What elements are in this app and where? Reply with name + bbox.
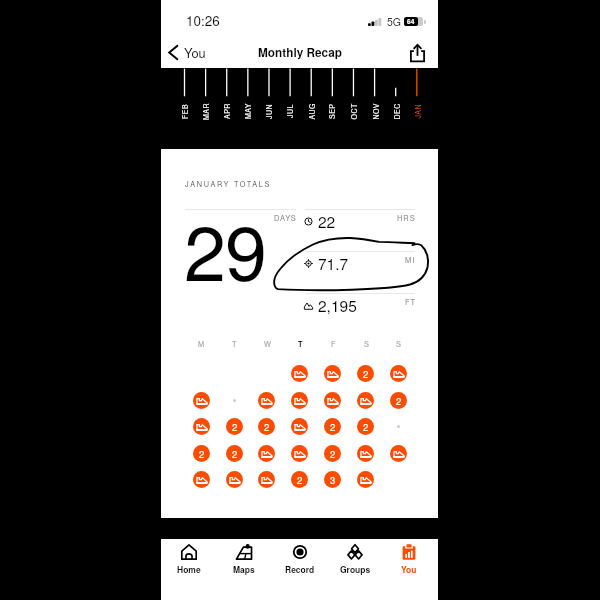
staticText: HRS (397, 212, 416, 223)
staticText: 71.7 (318, 252, 349, 274)
button[interactable] (258, 392, 275, 409)
button[interactable]: You (384, 539, 434, 579)
staticText: T (298, 339, 303, 350)
button[interactable]: 3 (324, 471, 341, 488)
staticText: JAN (412, 103, 422, 118)
staticText: Monthly Recap (258, 44, 342, 61)
staticText: DEC (391, 102, 401, 119)
staticText: Home (177, 563, 201, 575)
staticText: NOV (370, 102, 380, 119)
staticText: 2 (264, 420, 270, 434)
staticText: MAY (243, 103, 253, 119)
button[interactable]: You (165, 41, 214, 63)
staticText: 2,195 (318, 294, 357, 316)
button[interactable]: 2 (258, 418, 275, 435)
staticText: 2 (363, 420, 369, 434)
staticText: 2 (363, 367, 369, 381)
staticText: M (198, 339, 205, 350)
staticText: Maps (233, 563, 255, 575)
staticText: OCT (348, 102, 358, 119)
staticText: 3 (330, 473, 336, 487)
staticText: FEB (180, 103, 190, 119)
button[interactable] (291, 365, 308, 382)
staticText: You (184, 43, 206, 61)
button[interactable] (291, 445, 308, 462)
button[interactable] (324, 392, 341, 409)
button[interactable]: 2 (357, 418, 374, 435)
staticText: Record (285, 563, 315, 575)
button[interactable] (390, 365, 407, 382)
button[interactable] (258, 471, 275, 488)
button[interactable] (226, 471, 243, 488)
button[interactable]: 2 (193, 445, 210, 462)
button[interactable] (357, 392, 374, 409)
staticText: AUG (306, 102, 316, 119)
staticText: SEP (327, 103, 337, 119)
button[interactable] (357, 471, 374, 488)
staticText: 2 (232, 447, 238, 461)
staticText: 2 (330, 447, 336, 461)
staticText: MAR (201, 102, 211, 120)
button[interactable] (390, 445, 407, 462)
staticText: JANUARY TOTALS (185, 179, 272, 189)
staticText: 2 (232, 420, 238, 434)
staticText: APR (222, 103, 232, 119)
button[interactable] (324, 365, 341, 382)
button[interactable] (193, 392, 210, 409)
staticText: DAYS (274, 212, 297, 223)
staticText: 2 (297, 473, 303, 487)
staticText: MI (405, 254, 416, 265)
staticText: 2 (330, 420, 336, 434)
staticText: Groups (340, 563, 371, 575)
staticText: 2 (396, 394, 402, 408)
button[interactable]: 2 (291, 471, 308, 488)
button[interactable]: Groups (330, 539, 380, 579)
staticText: 10:26 (186, 11, 220, 30)
staticText: You (401, 563, 417, 575)
staticText: 5G (387, 14, 401, 27)
staticText: 2 (199, 447, 205, 461)
staticText: F (331, 339, 336, 350)
button[interactable]: Record (275, 539, 325, 579)
button[interactable]: Maps (219, 539, 269, 579)
staticText: 22 (318, 210, 336, 232)
button[interactable]: 2 (226, 418, 243, 435)
staticText: 29 (184, 194, 266, 294)
button[interactable]: 2 (324, 445, 341, 462)
staticText: S (364, 339, 369, 350)
button[interactable]: 2 (324, 418, 341, 435)
button[interactable] (193, 418, 210, 435)
staticText: JUN (264, 103, 274, 119)
staticText: 64 (407, 17, 415, 26)
button[interactable]: Home (164, 539, 214, 579)
staticText: T (232, 339, 237, 350)
button[interactable]: 2 (390, 392, 407, 409)
button[interactable] (258, 445, 275, 462)
button[interactable] (291, 392, 308, 409)
staticText: JUL (285, 104, 295, 118)
button[interactable] (193, 471, 210, 488)
staticText: FT (405, 296, 416, 307)
staticText: S (396, 339, 401, 350)
button[interactable]: 2 (226, 445, 243, 462)
button[interactable] (357, 445, 374, 462)
staticText: W (264, 339, 271, 350)
button[interactable] (291, 418, 308, 435)
button[interactable]: Share (407, 42, 428, 63)
button[interactable]: 2 (357, 365, 374, 382)
